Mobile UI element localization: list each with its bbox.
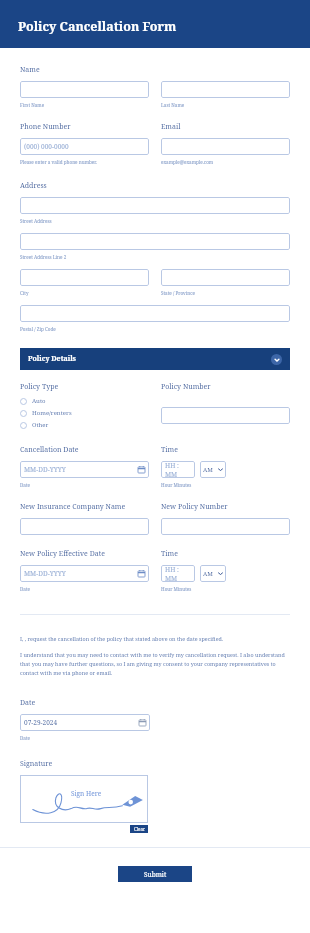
staticText: Hour Minutes	[161, 482, 192, 488]
staticText: First Name	[20, 102, 45, 108]
staticText: City	[20, 290, 29, 296]
staticText: Date	[20, 586, 31, 592]
button[interactable]: HH : MM	[161, 565, 195, 582]
button[interactable]: Other	[20, 419, 149, 431]
button[interactable]: Auto	[20, 395, 149, 407]
staticText: New Policy Effective Date	[20, 549, 105, 559]
staticText: Name	[20, 65, 40, 75]
button[interactable]	[161, 138, 290, 155]
staticText: AM	[203, 466, 218, 474]
button[interactable]: Clear	[130, 825, 148, 833]
staticText: Cancellation Date	[20, 445, 79, 455]
staticText: Policy Type	[20, 382, 59, 392]
staticText: I understand that you may need to contac…	[20, 651, 290, 676]
staticText: Policy Cancellation Form	[18, 18, 177, 35]
staticText: Policy Details	[28, 354, 271, 364]
button[interactable]: MM-DD-YYYY	[20, 461, 149, 478]
button[interactable]: Submit	[118, 866, 192, 882]
button[interactable]	[161, 518, 290, 535]
staticText: Date	[20, 698, 36, 708]
staticText: Hour Minutes	[161, 586, 192, 592]
staticText: HH : MM	[165, 565, 191, 582]
button[interactable]	[161, 81, 290, 98]
button[interactable]: MM-DD-YYYY	[20, 565, 149, 582]
staticText: Street Address Line 2	[20, 254, 67, 260]
button[interactable]: HH : MM	[161, 461, 195, 478]
button[interactable]	[20, 269, 149, 286]
staticText: State / Province	[161, 290, 195, 296]
staticText: Phone Number	[20, 122, 71, 132]
staticText: example@example.com	[161, 159, 214, 165]
staticText: AM	[203, 570, 218, 578]
staticText: Clear	[134, 826, 145, 832]
button[interactable]	[20, 81, 149, 98]
other: Collapse section	[271, 354, 282, 365]
staticText: Sign Here	[71, 789, 102, 798]
button[interactable]: (000) 000-0000	[20, 138, 149, 155]
staticText: Last Name	[161, 102, 185, 108]
staticText: MM-DD-YYYY	[24, 465, 66, 474]
staticText: Street Address	[20, 218, 52, 224]
staticText: Postal / Zip Code	[20, 326, 56, 332]
staticText: Date	[20, 482, 31, 488]
staticText: Please enter a valid phone number.	[20, 159, 97, 165]
staticText: Time	[161, 549, 178, 559]
staticText: New Policy Number	[161, 502, 228, 512]
staticText: Address	[20, 181, 47, 191]
button[interactable]: Home/renters	[20, 407, 149, 419]
staticText: Policy Number	[161, 382, 211, 392]
button[interactable]	[20, 197, 290, 214]
staticText: Auto	[32, 397, 46, 405]
button[interactable]	[161, 407, 290, 424]
button[interactable]	[161, 269, 290, 286]
button[interactable]: 07-29-2024	[20, 714, 150, 731]
button[interactable]: Policy Details	[20, 348, 290, 370]
staticText: I, , request the cancellation of the pol…	[20, 635, 290, 642]
button[interactable]	[20, 305, 290, 322]
staticText: MM-DD-YYYY	[24, 569, 66, 578]
staticText: HH : MM	[165, 461, 191, 478]
staticText: Email	[161, 122, 181, 132]
button[interactable]: AM	[200, 461, 226, 478]
button[interactable]	[20, 518, 149, 535]
staticText: Time	[161, 445, 178, 455]
staticText: (000) 000-0000	[24, 142, 69, 151]
button[interactable]: AM	[200, 565, 226, 582]
button[interactable]: Signature pad	[20, 775, 148, 823]
staticText: 07-29-2024	[24, 718, 58, 727]
staticText: Signature	[20, 759, 53, 769]
button[interactable]	[20, 233, 290, 250]
staticText: Other	[32, 421, 49, 429]
staticText: Home/renters	[32, 409, 72, 417]
staticText: Submit	[144, 870, 167, 879]
staticText: New Insurance Company Name	[20, 502, 126, 512]
staticText: Date	[20, 735, 31, 741]
